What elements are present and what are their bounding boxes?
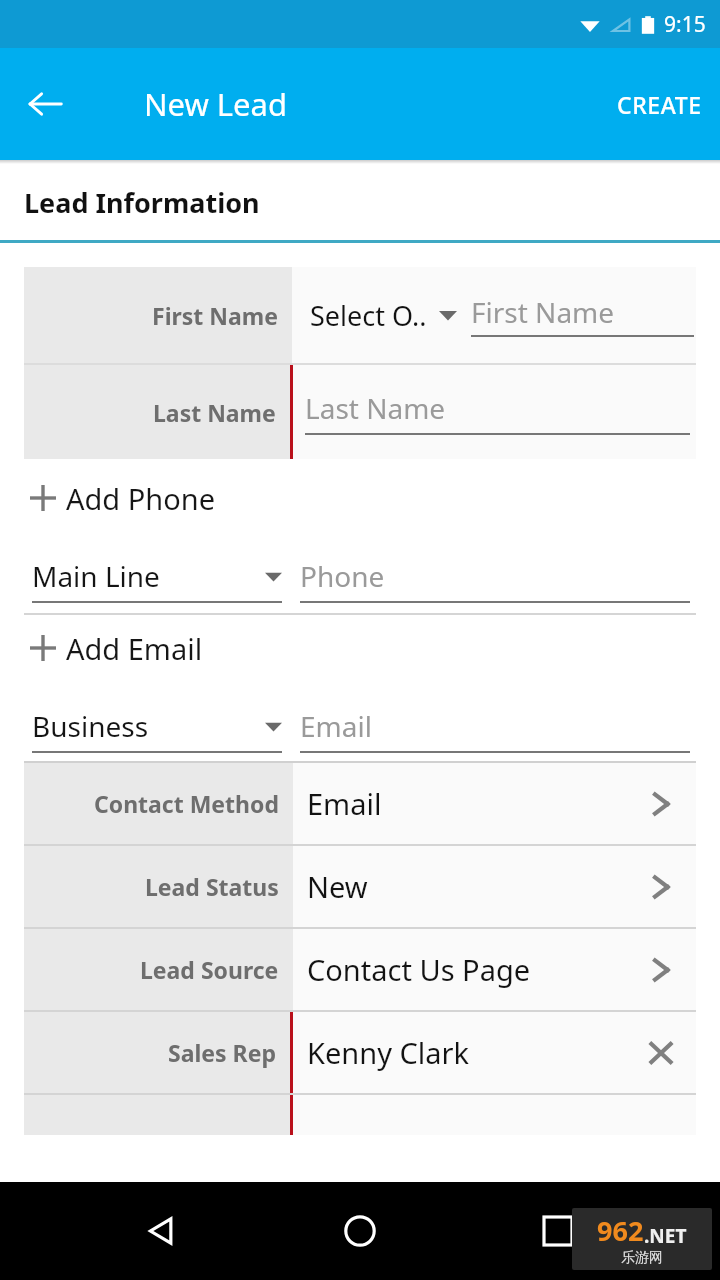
- button[interactable]: Add Email: [0, 617, 720, 679]
- staticText: Kenny Clark: [307, 1033, 646, 1072]
- button[interactable]: Lead Source: [24, 929, 696, 1010]
- staticText: Business: [32, 707, 265, 745]
- staticText: Select O..: [310, 297, 427, 334]
- button[interactable]: Last Name: [24, 365, 696, 459]
- button[interactable]: Back: [126, 1195, 198, 1267]
- staticText: Add Phone: [66, 479, 216, 518]
- button[interactable]: Back: [14, 73, 76, 135]
- button[interactable]: First Name: [24, 267, 696, 363]
- staticText: New: [307, 867, 646, 906]
- staticText: 9:15: [664, 10, 706, 39]
- staticText: .NET: [644, 1223, 687, 1249]
- staticText: Email: [300, 707, 372, 745]
- staticText: Lead Source: [140, 954, 279, 985]
- staticText: 962: [597, 1212, 644, 1249]
- staticText: Lead Information: [24, 184, 260, 221]
- button[interactable]: Lead Status: [24, 846, 696, 927]
- staticText: Contact Us Page: [307, 950, 646, 989]
- staticText: 乐游网: [621, 1249, 663, 1267]
- button[interactable]: Home: [324, 1195, 396, 1267]
- staticText: Email: [307, 784, 646, 823]
- button[interactable]: Business: [0, 679, 720, 753]
- staticText: First Name: [471, 293, 615, 331]
- staticText: Last Name: [305, 389, 446, 427]
- staticText: Phone: [300, 557, 385, 595]
- staticText: First Name: [152, 300, 278, 331]
- button[interactable]: Main Line: [0, 529, 720, 603]
- button[interactable]: Add Phone: [0, 467, 720, 529]
- staticText: Add Email: [66, 629, 203, 668]
- other: Clear: [646, 1038, 676, 1068]
- button[interactable]: CREATE: [599, 73, 720, 136]
- staticText: New Lead: [144, 83, 288, 125]
- button[interactable]: Recent apps: [522, 1195, 594, 1267]
- staticText: Last Name: [153, 397, 276, 428]
- button[interactable]: Contact Method: [24, 763, 696, 844]
- staticText: CREATE: [617, 89, 702, 120]
- button[interactable]: Sales Rep: [24, 1012, 696, 1093]
- staticText: Sales Rep: [168, 1037, 276, 1068]
- staticText: Contact Method: [94, 788, 279, 819]
- staticText: Lead Status: [145, 871, 279, 902]
- staticText: Main Line: [32, 557, 265, 595]
